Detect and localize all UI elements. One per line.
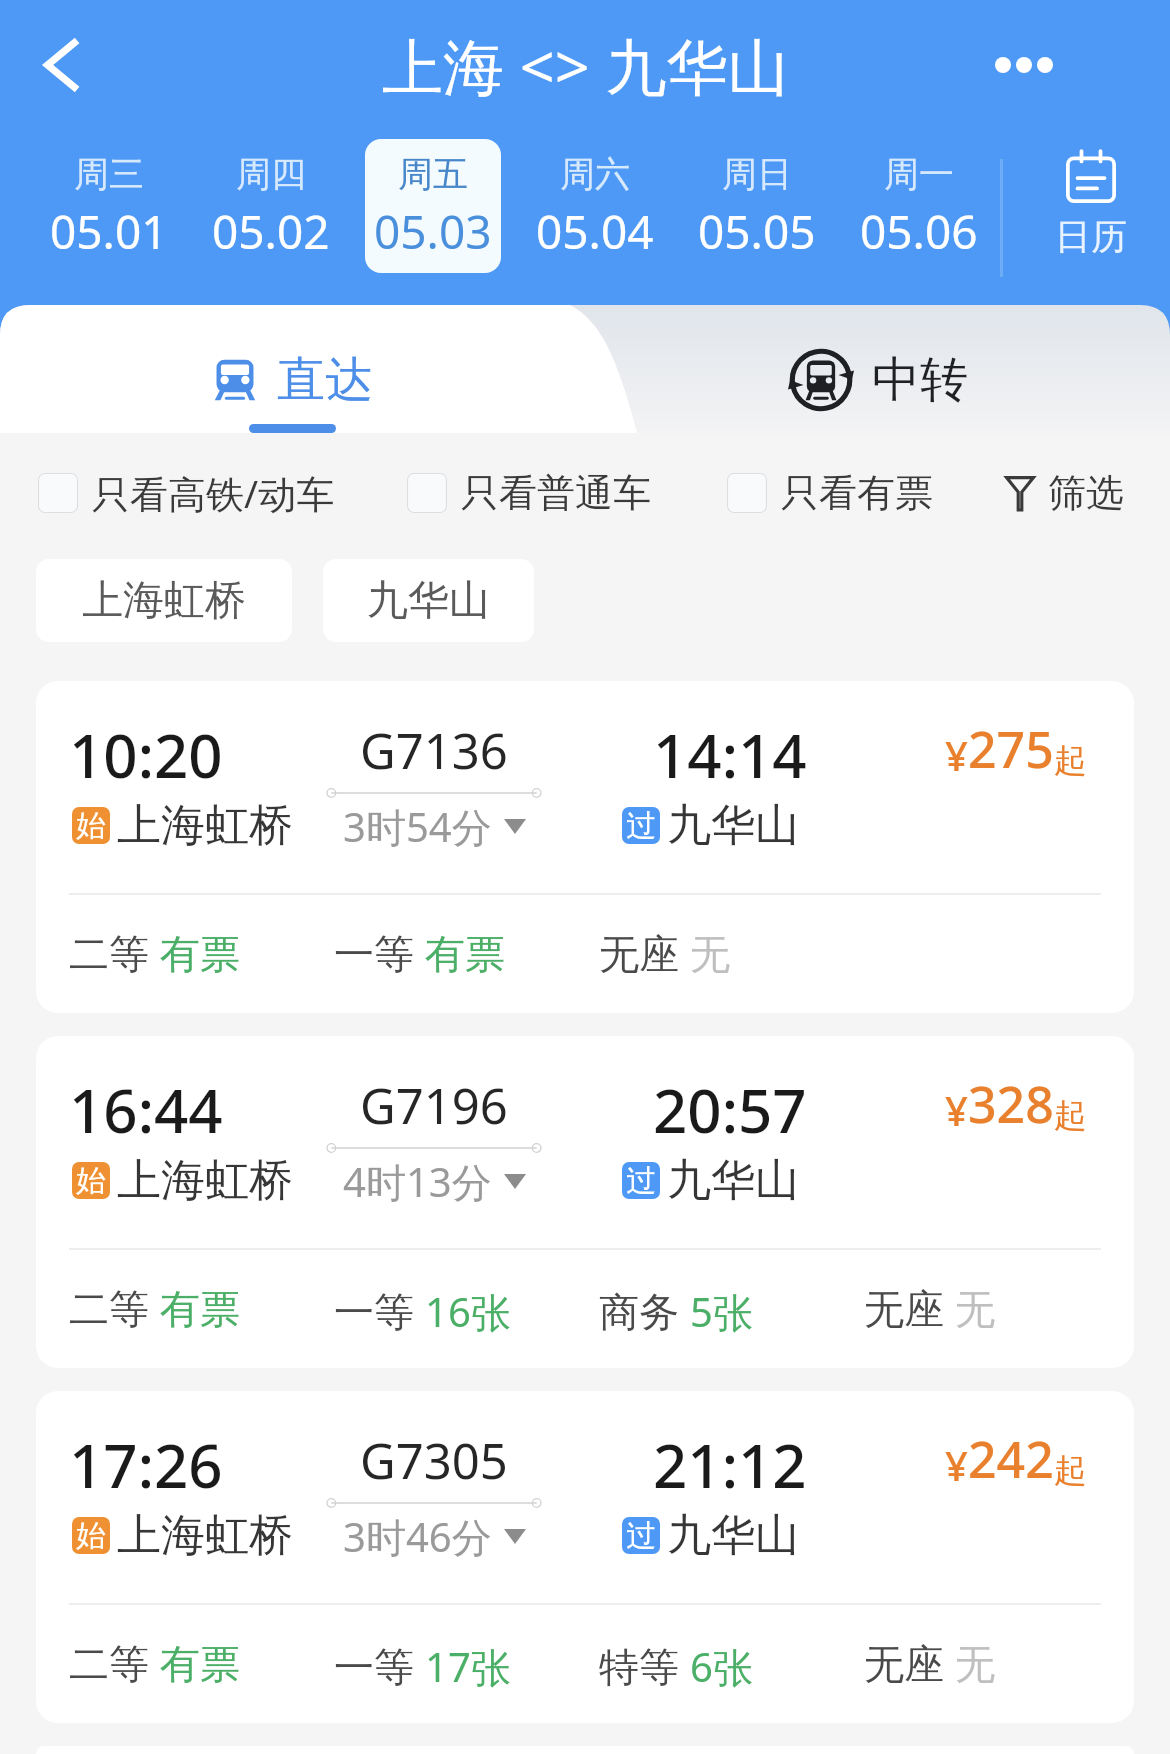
staticText: 275	[968, 715, 1054, 783]
staticText: 无	[955, 1639, 995, 1689]
button[interactable]: 筛选	[1005, 469, 1124, 517]
staticText: 九华山	[667, 798, 799, 853]
button[interactable]: 周四	[203, 139, 339, 273]
staticText: 过	[626, 1517, 656, 1554]
button[interactable]: 只看有票	[727, 469, 933, 517]
staticText: 上海虹桥	[82, 575, 246, 627]
staticText: 6张	[690, 1639, 753, 1694]
staticText: 3时54分	[343, 799, 492, 854]
staticText: ¥	[945, 728, 968, 782]
staticText: 一等	[334, 929, 414, 979]
button[interactable]: 只看高铁/动车	[38, 467, 335, 519]
button[interactable]: 周日	[689, 139, 825, 273]
staticText: 九华山	[367, 575, 490, 627]
staticText: 周一	[884, 152, 954, 196]
staticText: 328	[968, 1070, 1054, 1138]
button[interactable]: Back	[12, 15, 112, 115]
staticText: 5张	[690, 1284, 753, 1339]
staticText: ¥	[945, 1438, 968, 1492]
staticText: 周三	[74, 152, 144, 196]
staticText: ¥	[945, 1083, 968, 1137]
staticText: 周四	[236, 152, 306, 196]
staticText: 一等	[334, 1642, 414, 1692]
staticText: 周五	[398, 152, 468, 196]
staticText: 二等	[69, 929, 149, 979]
button[interactable]: 周一	[851, 139, 987, 273]
staticText: 05.03	[374, 200, 492, 263]
staticText: 周日	[722, 152, 792, 196]
staticText: 05.04	[536, 200, 654, 263]
staticText: 只看普通车	[461, 469, 651, 517]
staticText: 无	[690, 929, 730, 979]
staticText: 21:12	[653, 1424, 807, 1506]
staticText: 有票	[160, 929, 240, 979]
staticText: 有票	[160, 1284, 240, 1334]
staticText: 无座	[864, 1639, 944, 1689]
staticText: 只看有票	[781, 469, 933, 517]
staticText: 始	[76, 807, 106, 844]
button[interactable]: 周六	[527, 139, 663, 273]
staticText: 10:20	[69, 714, 223, 796]
staticText: 17:26	[69, 1424, 223, 1506]
staticText: 14:14	[653, 714, 807, 796]
staticText: 上海 <> 九华山	[382, 24, 789, 107]
staticText: 起	[1054, 1095, 1087, 1137]
staticText: 特等	[599, 1642, 679, 1692]
staticText: 始	[76, 1517, 106, 1554]
staticText: 周六	[560, 152, 630, 196]
button[interactable]: More options	[994, 35, 1054, 95]
button[interactable]: 日历	[1011, 130, 1170, 279]
staticText: 有票	[425, 929, 505, 979]
button[interactable]: 九华山	[323, 559, 534, 642]
button[interactable]: 中转	[585, 305, 1170, 433]
button[interactable]: 上海虹桥	[36, 559, 292, 642]
staticText: 16:44	[69, 1069, 223, 1151]
staticText: G7136	[360, 717, 508, 784]
staticText: 3时46分	[343, 1509, 492, 1564]
staticText: 九华山	[667, 1508, 799, 1563]
staticText: 二等	[69, 1639, 149, 1689]
button[interactable]: 周三	[41, 139, 177, 273]
staticText: 20:57	[653, 1069, 807, 1151]
staticText: 无	[955, 1284, 995, 1334]
staticText: 17张	[425, 1639, 511, 1694]
staticText: 05.05	[698, 200, 816, 263]
staticText: 筛选	[1048, 469, 1124, 517]
staticText: 16张	[425, 1284, 511, 1339]
staticText: 无座	[599, 929, 679, 979]
button[interactable]: 只看普通车	[407, 469, 651, 517]
staticText: 4时13分	[343, 1154, 492, 1209]
staticText: 起	[1054, 740, 1087, 782]
staticText: G7196	[360, 1072, 508, 1139]
staticText: 上海虹桥	[117, 798, 293, 853]
staticText: 九华山	[667, 1153, 799, 1208]
staticText: 05.01	[50, 200, 168, 263]
staticText: 起	[1054, 1450, 1087, 1492]
staticText: 只看高铁/动车	[92, 467, 335, 519]
button[interactable]: 直达	[0, 305, 585, 433]
staticText: 有票	[160, 1639, 240, 1689]
staticText: 05.02	[212, 200, 330, 263]
button[interactable]: 10:20	[36, 681, 1134, 1013]
staticText: 过	[626, 807, 656, 844]
button[interactable]: 17:26	[36, 1391, 1134, 1723]
staticText: 商务	[599, 1287, 679, 1337]
staticText: 05.06	[860, 200, 978, 263]
staticText: 过	[626, 1162, 656, 1199]
staticText: 日历	[1055, 214, 1127, 259]
staticText: 242	[968, 1425, 1054, 1493]
staticText: 二等	[69, 1284, 149, 1334]
staticText: 直达	[277, 350, 373, 410]
staticText: 上海虹桥	[117, 1508, 293, 1563]
staticText: G7305	[360, 1427, 508, 1494]
button[interactable]: 16:44	[36, 1036, 1134, 1368]
staticText: 始	[76, 1162, 106, 1199]
button[interactable]: 周五	[365, 139, 501, 273]
staticText: 一等	[334, 1287, 414, 1337]
staticText: 上海虹桥	[117, 1153, 293, 1208]
staticText: 中转	[872, 350, 968, 410]
staticText: 无座	[864, 1284, 944, 1334]
